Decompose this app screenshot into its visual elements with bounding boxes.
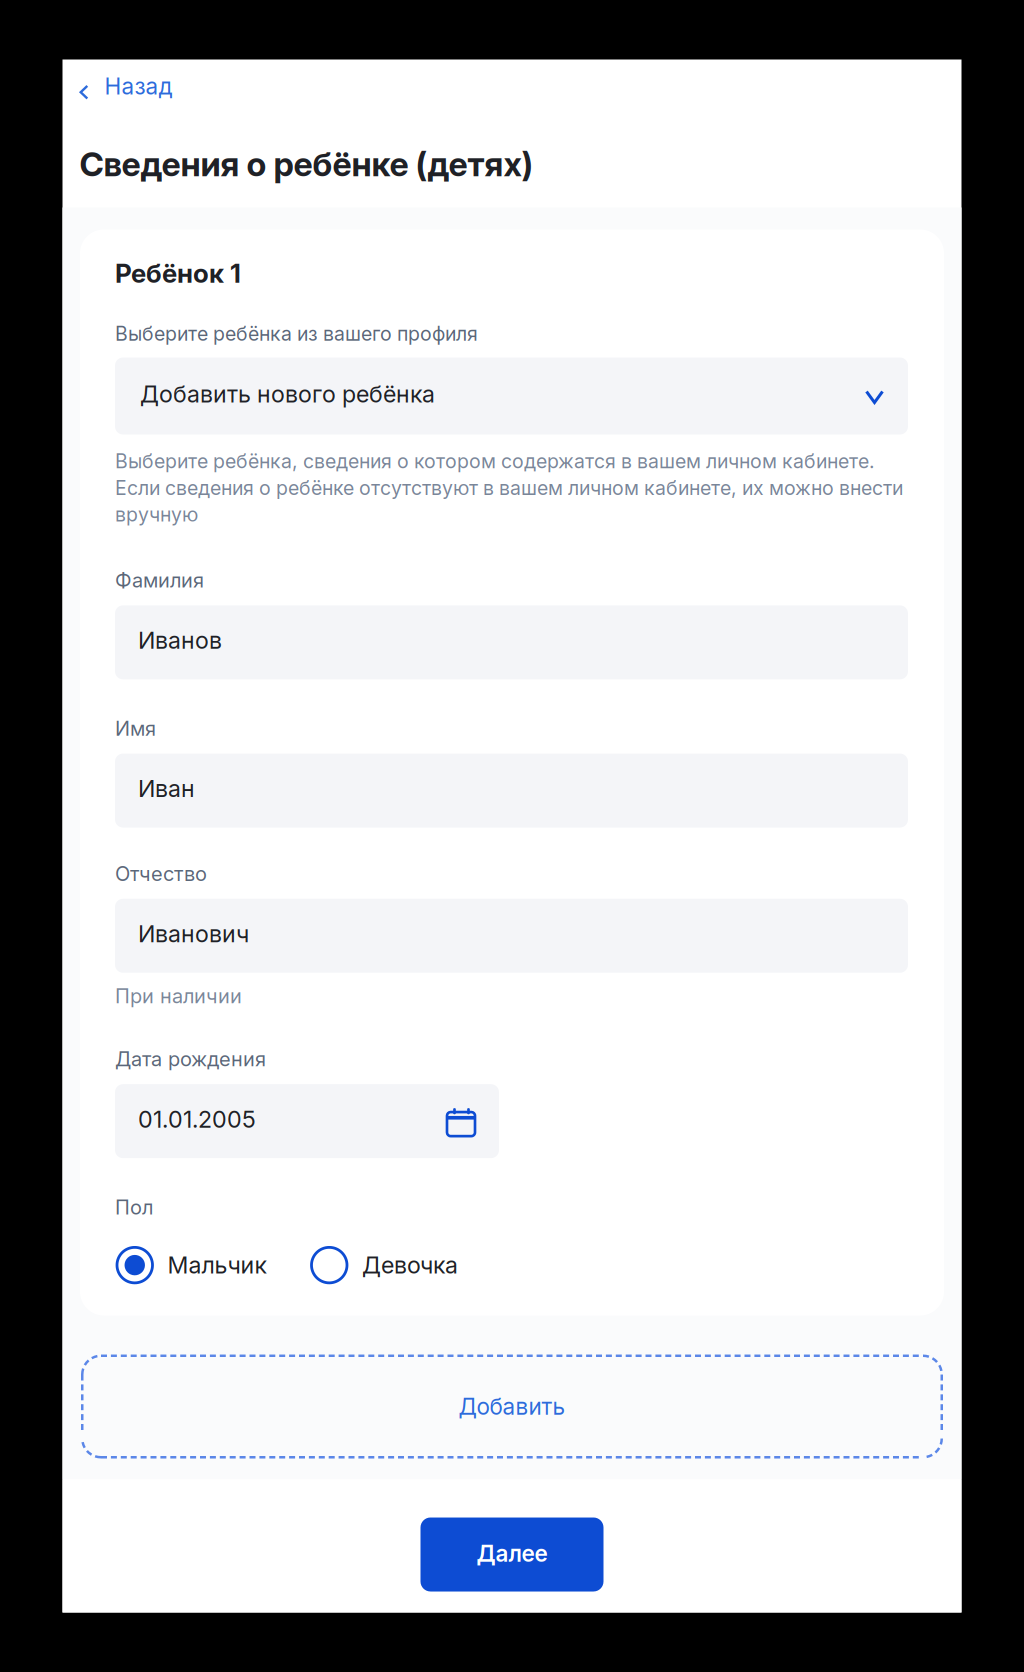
staticText: Выберите ребёнка, сведения о котором сод… <box>115 449 875 473</box>
button[interactable]: Добавить <box>81 1354 943 1458</box>
staticText: Девочка <box>362 1251 458 1279</box>
staticText: 01.01.2005 <box>138 1105 256 1133</box>
staticText: При наличии <box>115 984 242 1008</box>
button[interactable]: 01.01.2005 <box>115 1084 499 1158</box>
staticText: Если сведения о ребёнке отсутствуют в ва… <box>115 476 903 500</box>
staticText: Иванович <box>138 920 249 948</box>
staticText: вручную <box>115 503 198 526</box>
staticText: Ребёнок 1 <box>115 257 241 289</box>
button[interactable]: Далее <box>420 1517 603 1591</box>
staticText: Добавить <box>458 1393 565 1420</box>
staticText: Фамилия <box>115 568 204 592</box>
staticText: Имя <box>115 716 156 741</box>
staticText: Назад <box>104 72 172 100</box>
button[interactable]: Иванов <box>115 605 908 679</box>
staticText: Иван <box>138 774 195 803</box>
staticText: Мальчик <box>167 1251 266 1279</box>
staticText: Дата рождения <box>115 1047 266 1071</box>
staticText: Далее <box>476 1540 547 1567</box>
button[interactable]: Иван <box>115 754 908 828</box>
staticText: Сведения о ребёнке (детях) <box>79 144 533 184</box>
button[interactable]: Добавить нового ребёнка <box>115 357 908 434</box>
staticText: Иванов <box>138 626 222 654</box>
button[interactable]: Назад <box>62 67 182 105</box>
staticText: Отчество <box>115 862 207 886</box>
button[interactable]: Девочка <box>311 1247 458 1283</box>
button[interactable]: Иванович <box>115 899 908 973</box>
staticText: Добавить нового ребёнка <box>140 380 435 408</box>
button[interactable]: Мальчик <box>117 1247 266 1283</box>
staticText: Выберите ребёнка из вашего профиля <box>115 322 478 346</box>
staticText: Пол <box>115 1195 153 1219</box>
